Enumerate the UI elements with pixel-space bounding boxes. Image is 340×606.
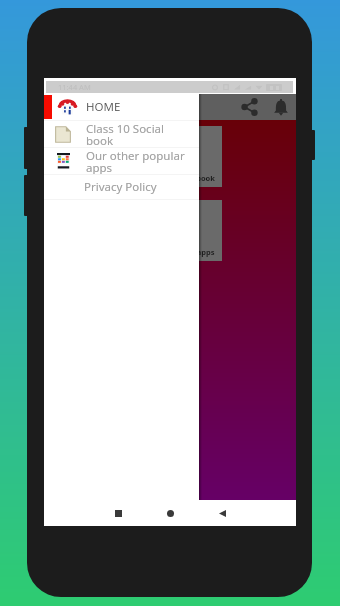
button[interactable]: Our other popular apps <box>58 200 222 261</box>
button[interactable]: Class 10 Social book <box>58 126 222 187</box>
staticText: Class 10 Social book <box>141 173 215 183</box>
button[interactable]: Our other popular apps <box>44 148 199 174</box>
staticText: Our other popular apps <box>86 148 185 174</box>
staticText: Our other popular apps <box>127 247 215 257</box>
button[interactable]: Privacy Policy <box>44 175 199 199</box>
button[interactable]: Share <box>237 94 262 120</box>
button[interactable]: Class 10 Social book <box>44 121 199 147</box>
button[interactable]: Recents <box>107 502 129 524</box>
button[interactable]: Home <box>159 502 181 524</box>
staticText: Privacy Policy <box>84 179 157 195</box>
staticText: 11:44 AM <box>58 82 91 92</box>
staticText: HOME <box>86 99 121 115</box>
staticText: Class 10 Social book <box>86 121 165 147</box>
button[interactable]: Notifications <box>268 94 293 120</box>
button[interactable]: Back <box>211 502 233 524</box>
button[interactable]: HOME <box>44 94 199 120</box>
